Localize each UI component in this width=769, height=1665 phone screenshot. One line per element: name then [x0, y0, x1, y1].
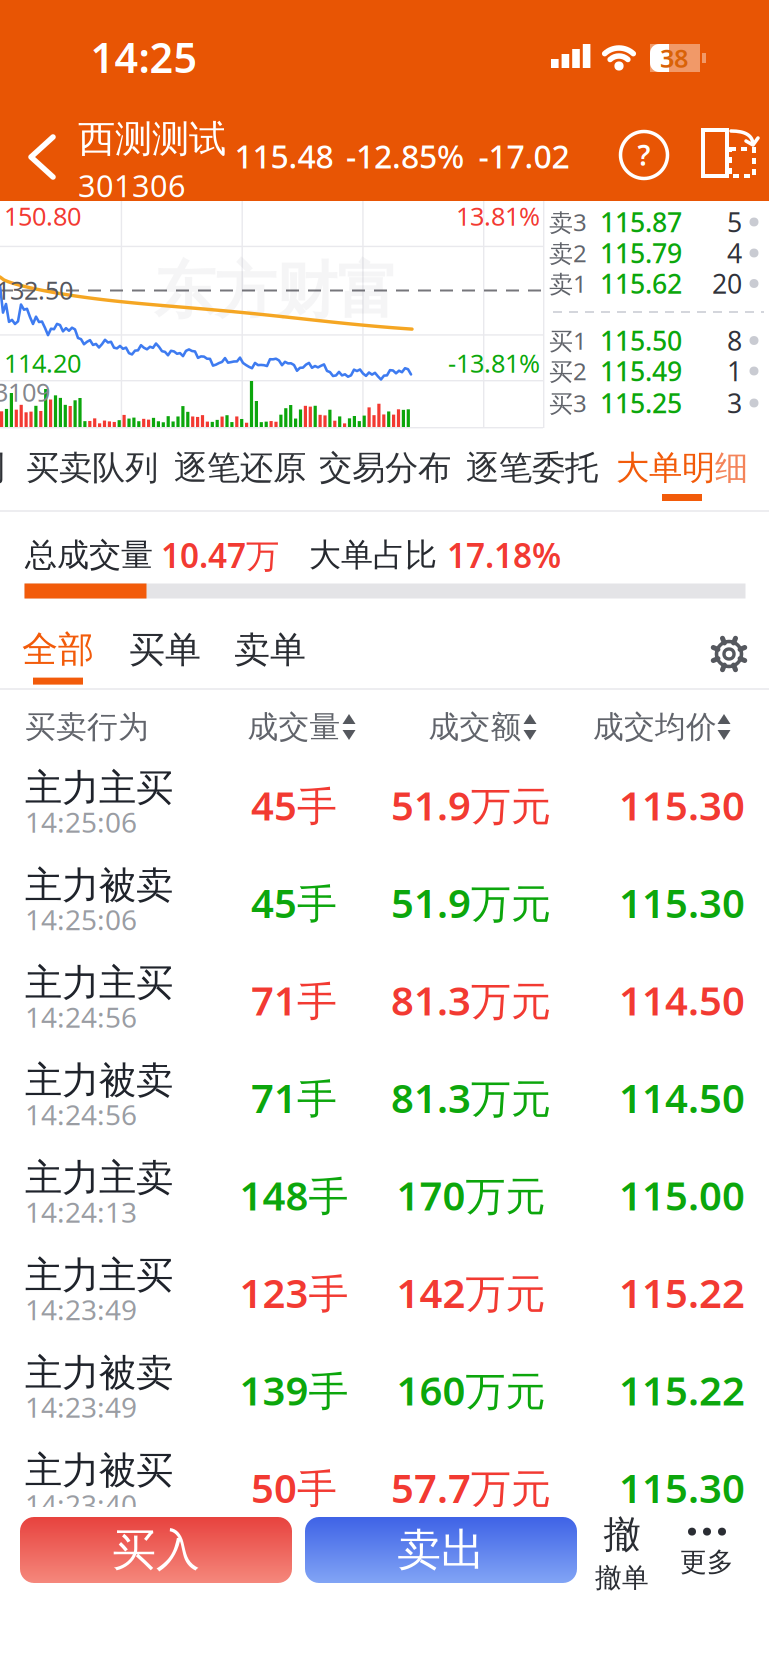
staticText: 115.87: [600, 204, 682, 240]
staticText: 逐笔还原: [174, 447, 306, 488]
staticText: 142万元: [396, 1266, 545, 1319]
staticText: 买单: [129, 628, 201, 672]
staticText: 主力主买: [25, 1253, 173, 1298]
staticText: 14:25:06: [25, 803, 137, 841]
button[interactable]: 逐笔委托: [462, 440, 602, 496]
button[interactable]: Help: [614, 125, 674, 185]
staticText: 115.30: [619, 778, 745, 831]
staticText: 114.20: [4, 346, 81, 380]
staticText: 115.79: [600, 235, 682, 271]
button[interactable]: 卖出: [305, 1517, 577, 1583]
staticText: 115.25: [600, 385, 682, 421]
button[interactable]: 买单: [110, 620, 220, 680]
staticText: 3: [727, 385, 742, 421]
staticText: 交易分布: [319, 447, 451, 488]
staticText: 115.48: [234, 135, 333, 177]
button[interactable]: 买卖队列: [22, 440, 162, 496]
staticText: 卖3: [549, 206, 587, 238]
staticText: 115.50: [600, 323, 682, 358]
staticText: 主力主买: [25, 765, 173, 811]
staticText: 主力被卖: [25, 1350, 173, 1396]
staticText: 卖出: [397, 1523, 485, 1577]
staticText: 更多: [680, 1546, 734, 1578]
staticText: ?: [637, 136, 650, 174]
staticText: 81.3万元: [391, 1071, 551, 1124]
staticText: 逐笔委托: [466, 447, 598, 488]
button[interactable]: 卖单: [215, 620, 325, 680]
staticText: 列: [0, 447, 4, 488]
button[interactable]: Back: [14, 121, 70, 191]
staticText: 卖单: [234, 628, 306, 672]
staticText: 主力被买: [25, 1448, 173, 1493]
staticText: 132.50: [0, 273, 73, 307]
button[interactable]: 大单明: [607, 440, 757, 496]
staticText: 卖2: [549, 237, 587, 269]
staticText: 71手: [251, 1071, 337, 1124]
staticText: 撤单: [595, 1562, 649, 1594]
button[interactable]: 全部: [3, 622, 113, 690]
staticText: 14:23:40: [25, 1486, 137, 1523]
staticText: 13.81%: [456, 199, 540, 233]
staticText: 撤: [603, 1512, 640, 1558]
staticText: 主力主买: [25, 960, 173, 1006]
button[interactable]: Rotate to landscape: [697, 125, 761, 187]
staticText: 买入: [112, 1523, 200, 1577]
staticText: 14:23:49: [25, 1388, 137, 1426]
staticText: 57.7万元: [391, 1461, 551, 1514]
button[interactable]: 撤: [577, 1507, 667, 1599]
staticText: 50手: [251, 1461, 337, 1514]
staticText: 东方财富: [154, 253, 398, 329]
staticText: 卖1: [549, 268, 587, 299]
staticText: 71手: [251, 973, 337, 1026]
staticText: 115.22: [619, 1266, 745, 1319]
staticText: 115.49: [600, 353, 682, 389]
staticText: 170万元: [396, 1168, 545, 1221]
staticText: 115.00: [619, 1168, 745, 1221]
staticText: 115.30: [619, 876, 745, 929]
staticText: 150.80: [4, 199, 81, 233]
staticText: 14:24:13: [25, 1193, 137, 1231]
button[interactable]: 交易分布: [315, 440, 455, 496]
staticText: 大单占比: [309, 535, 437, 575]
staticText: 14:24:56: [25, 998, 137, 1036]
button[interactable]: Settings: [707, 632, 751, 676]
staticText: 51.9万元: [391, 778, 551, 831]
staticText: 8: [727, 323, 742, 358]
staticText: 4: [727, 235, 742, 271]
staticText: 45手: [251, 876, 337, 929]
staticText: 45手: [251, 778, 337, 831]
staticText: 1: [727, 353, 742, 389]
staticText: 细: [715, 447, 748, 488]
staticText: -13.81%: [448, 346, 540, 380]
staticText: 5: [727, 204, 742, 240]
staticText: 西测测试: [78, 116, 226, 162]
staticText: 148手: [239, 1168, 348, 1221]
staticText: 成交量: [247, 708, 340, 746]
staticText: 买卖行为: [25, 708, 149, 746]
staticText: 买卖队列: [26, 447, 158, 488]
staticText: 14:24:56: [25, 1096, 137, 1133]
staticText: 成交额: [428, 708, 521, 746]
staticText: 114.50: [619, 1071, 745, 1124]
staticText: 17.18%: [447, 533, 561, 577]
staticText: 主力主卖: [25, 1155, 173, 1201]
staticText: 123手: [239, 1266, 348, 1319]
staticText: 115.22: [619, 1363, 745, 1416]
staticText: 115.62: [600, 266, 682, 301]
staticText: 14:23:49: [25, 1291, 137, 1328]
staticText: 115.30: [619, 1461, 745, 1514]
staticText: 总成交量: [25, 535, 153, 575]
staticText: 主力被卖: [25, 1058, 173, 1103]
staticText: 全部: [22, 627, 94, 672]
staticText: 大单明: [616, 447, 715, 488]
staticText: 81.3万元: [391, 973, 551, 1026]
button[interactable]: 逐笔还原: [170, 440, 310, 496]
staticText: 139手: [239, 1363, 348, 1416]
staticText: -17.02: [478, 135, 569, 177]
button[interactable]: More: [662, 1507, 752, 1599]
staticText: 10.47万: [161, 533, 279, 577]
staticText: 成交均价: [593, 708, 717, 746]
staticText: 51.9万元: [391, 876, 551, 929]
staticText: 买3: [549, 387, 587, 419]
button[interactable]: 买入: [20, 1517, 292, 1583]
